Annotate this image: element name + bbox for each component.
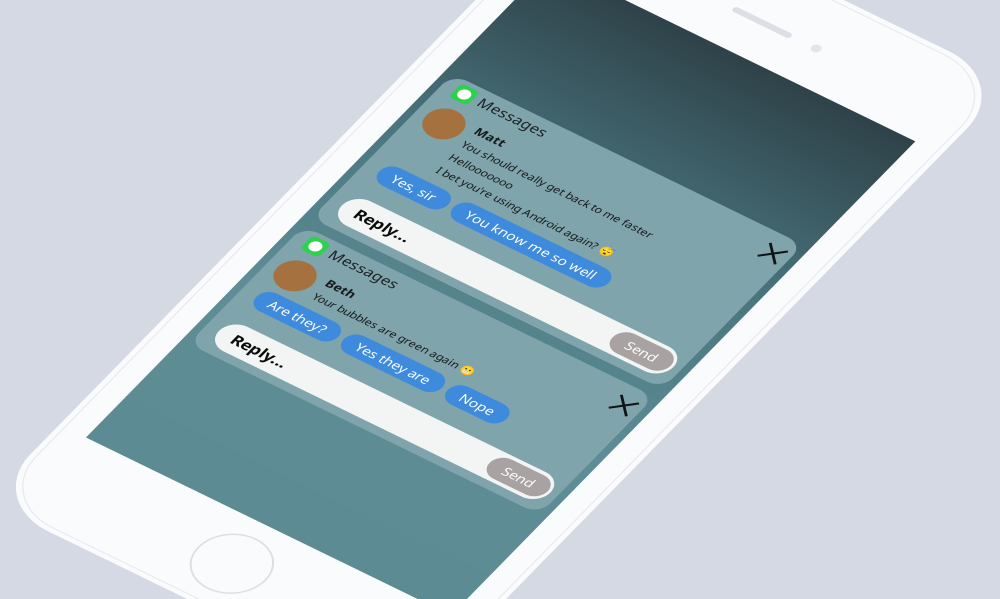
button[interactable]: You know me so well [109, 292, 285, 319]
staticText: I bet you're using Android again? 😴 [68, 266, 267, 281]
staticText: Send [345, 351, 379, 371]
button[interactable]: Yes they are [124, 487, 236, 514]
staticText: Messages [49, 406, 125, 427]
staticText: Your bubbles are green again 😬 [68, 462, 250, 478]
staticText: Yes they are [139, 491, 221, 510]
staticText: You should really get back to me faster [68, 226, 283, 242]
staticText: Send [345, 546, 379, 566]
button[interactable]: Dismiss notification [378, 180, 400, 202]
button[interactable]: Dismiss notification [378, 416, 400, 438]
staticText: Beth [68, 440, 100, 458]
staticText: You know me so well [124, 296, 270, 315]
staticText: Reply... [38, 544, 99, 567]
